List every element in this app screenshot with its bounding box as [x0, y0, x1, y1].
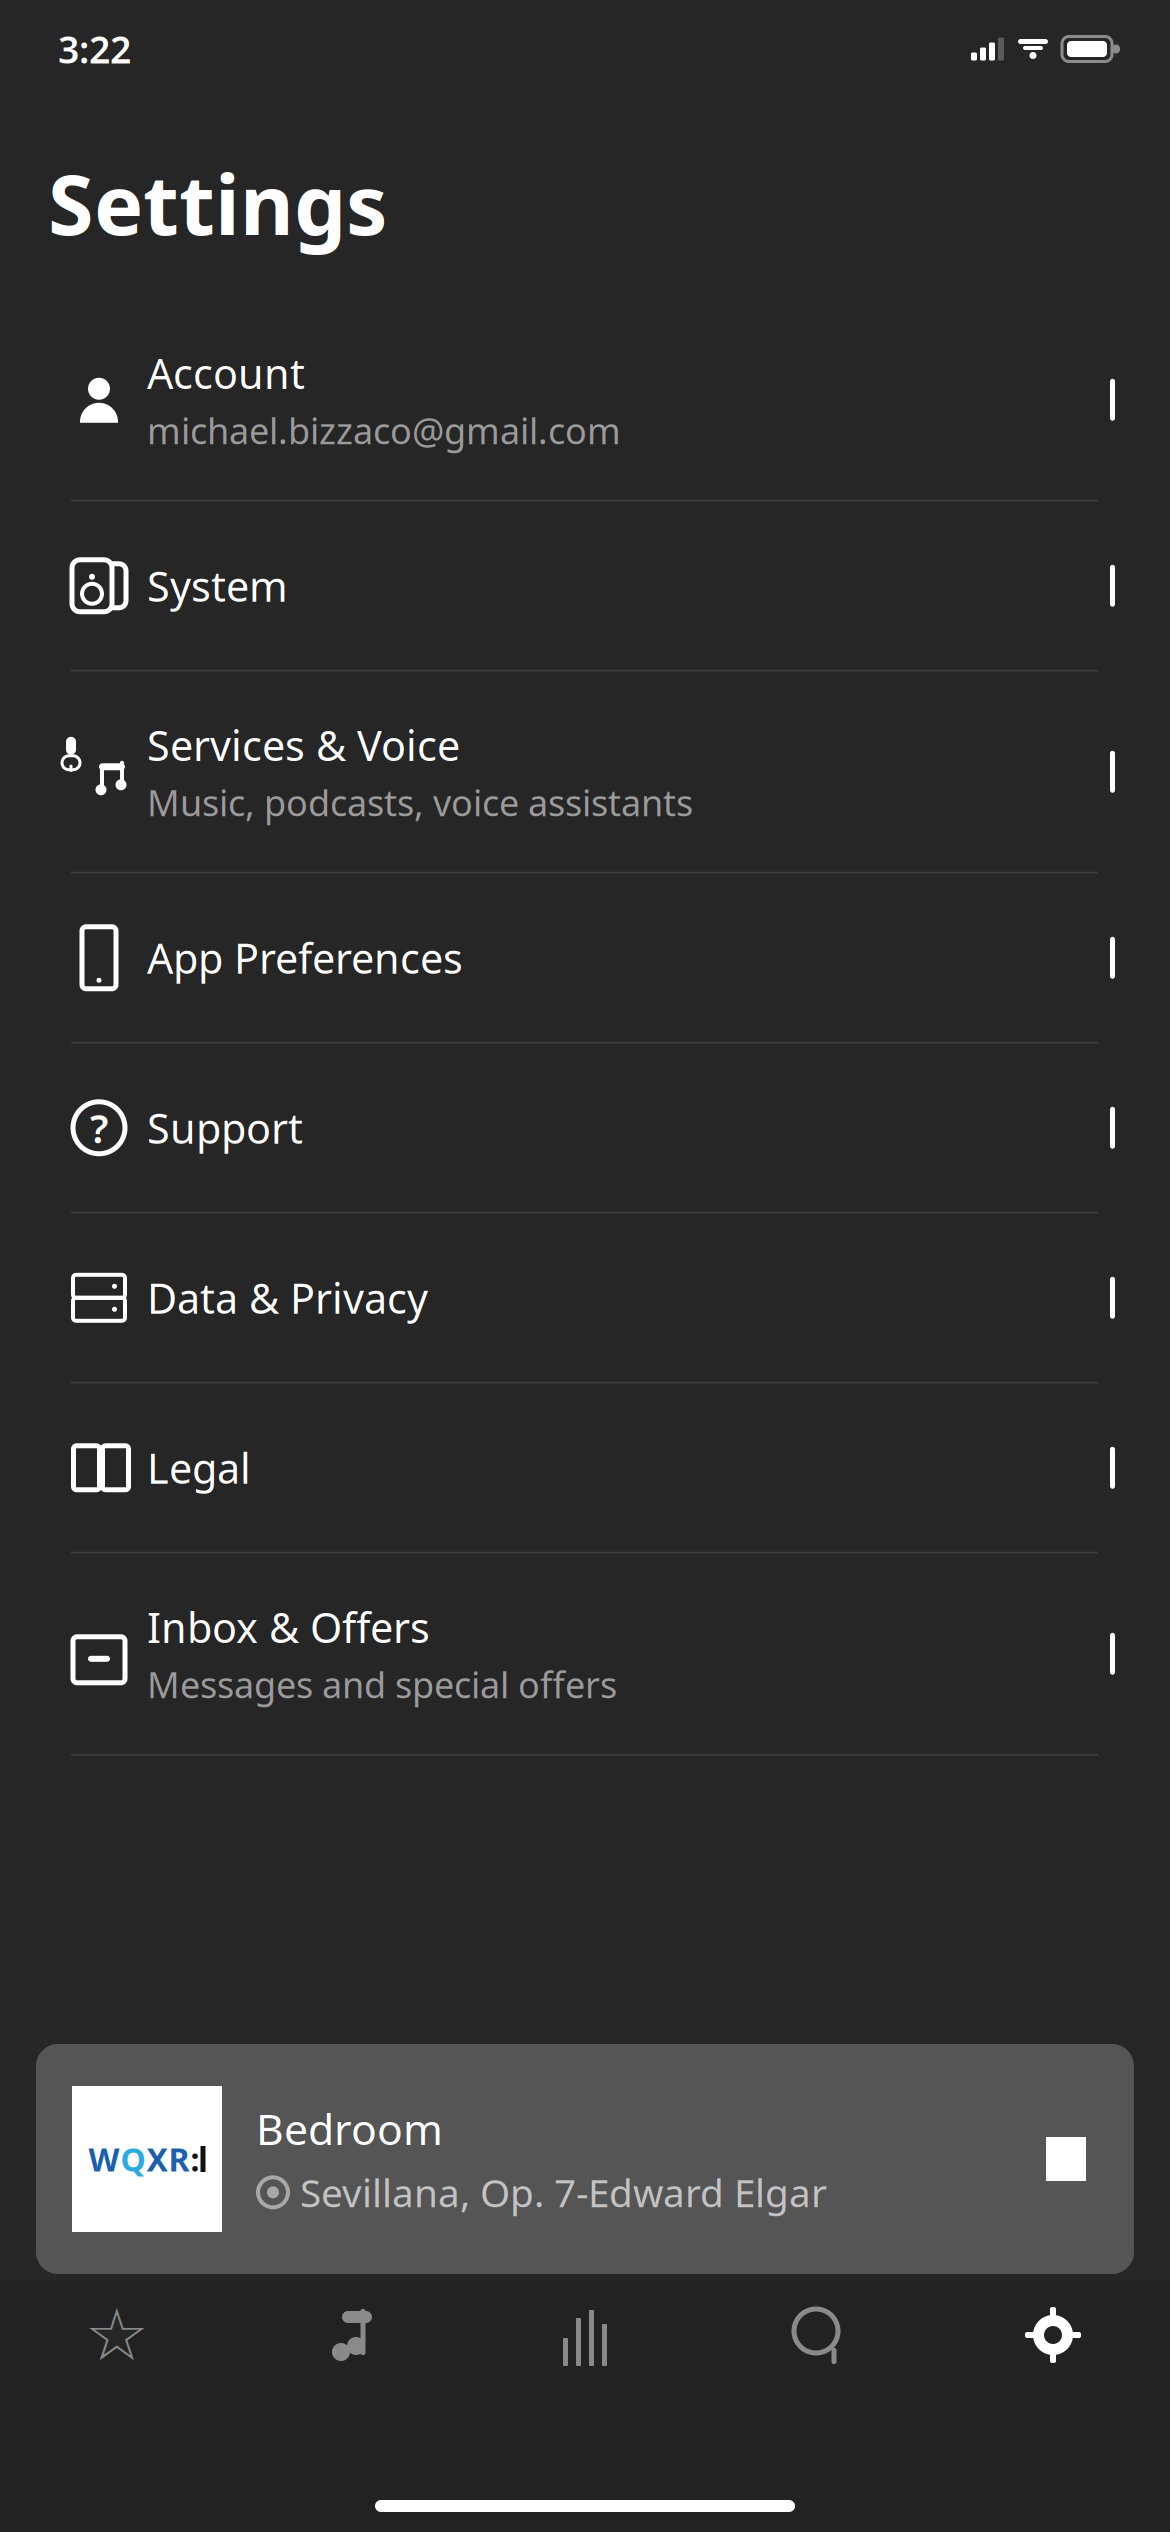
staticText: X	[146, 2138, 167, 2180]
staticText: App Preferences	[147, 930, 463, 985]
staticText: michael.bizzaco@gmail.com	[147, 406, 621, 454]
button[interactable]: Services & Voice	[0, 672, 1170, 872]
staticText: ?	[90, 1101, 108, 1154]
staticText: Q	[120, 2138, 145, 2180]
button[interactable]: Account	[0, 300, 1170, 500]
button[interactable]: Music	[234, 2280, 468, 2390]
staticText: Legal	[147, 1440, 251, 1495]
staticText: Support	[147, 1100, 303, 1155]
button[interactable]: Data & Privacy	[0, 1214, 1170, 1382]
staticText: Services & Voice	[147, 717, 460, 772]
staticText: Settings	[48, 148, 387, 258]
button[interactable]: Legal	[0, 1384, 1170, 1552]
staticText: R	[168, 2138, 189, 2180]
button[interactable]: Live Radio	[468, 2280, 702, 2390]
staticText: ★	[84, 2294, 149, 2376]
button[interactable]: System	[0, 502, 1170, 670]
staticText: Inbox & Offers	[147, 1599, 430, 1654]
staticText: :	[190, 2138, 199, 2180]
button[interactable]: App Preferences	[0, 874, 1170, 1042]
staticText: Messages and special offers	[147, 1660, 617, 1708]
button[interactable]: Inbox & Offers	[0, 1554, 1170, 1754]
staticText: Sevillana, Op. 7-Edward Elgar	[300, 2167, 827, 2218]
staticText: Music, podcasts, voice assistants	[147, 778, 693, 826]
staticText: Account	[147, 345, 305, 400]
button[interactable]: Search	[702, 2280, 936, 2390]
button[interactable]: Settings	[936, 2280, 1170, 2390]
button[interactable]: ?	[0, 1044, 1170, 1212]
staticText: System	[147, 558, 288, 613]
button[interactable]: W	[36, 2044, 1134, 2274]
staticText: Bedroom	[256, 2100, 443, 2157]
staticText: 3:22	[58, 24, 131, 74]
staticText: W	[88, 2138, 119, 2180]
staticText: Data & Privacy	[147, 1270, 428, 1325]
button[interactable]: Favorites	[0, 2280, 234, 2390]
staticText: ☆	[84, 2294, 149, 2376]
